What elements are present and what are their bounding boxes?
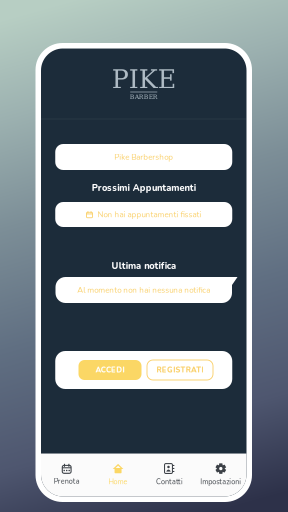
staticText: Contatti [156, 477, 183, 487]
staticText: BARBER [130, 93, 158, 100]
button[interactable]: Contatti [144, 460, 195, 490]
staticText: Prenota [54, 477, 80, 486]
staticText: Impostazioni [200, 477, 241, 487]
staticText: Pike Barbershop [114, 151, 173, 162]
button[interactable]: Home [92, 460, 144, 490]
staticText: Ultima notifica [112, 260, 176, 272]
button[interactable]: Prenota [41, 460, 92, 490]
staticText: Home [109, 477, 128, 487]
staticText: Prossimi Appuntamenti [92, 182, 196, 194]
button[interactable]: REGISTRATI [147, 360, 213, 380]
staticText: Non hai appuntamenti fissati [97, 209, 201, 220]
staticText: PIKE [112, 65, 176, 94]
button[interactable]: Impostazioni [195, 460, 246, 490]
staticText: REGISTRATI [157, 365, 203, 375]
staticText: Al momento non hai nessuna notifica [77, 284, 210, 295]
button[interactable]: Pike Barbershop [55, 144, 232, 170]
staticText: ACCEDI [95, 365, 124, 375]
button[interactable]: ACCEDI [78, 360, 141, 380]
